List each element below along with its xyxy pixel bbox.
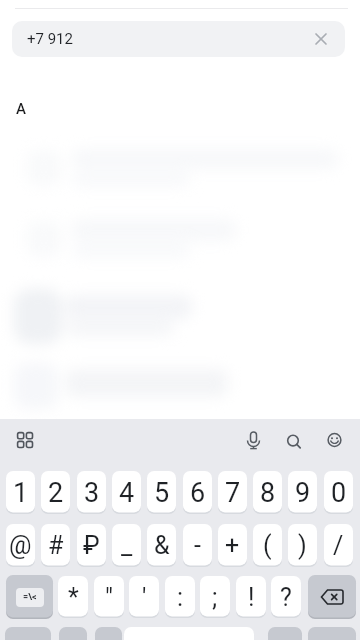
staticText: 6	[190, 477, 206, 509]
button[interactable]: -	[183, 524, 212, 567]
button[interactable]	[324, 430, 345, 451]
button[interactable]: 8	[253, 471, 282, 514]
staticText: 2	[48, 477, 64, 509]
button[interactable]: ?	[271, 576, 301, 618]
button[interactable]: +7 912	[12, 21, 345, 57]
staticText: 3	[84, 477, 100, 509]
staticText: _	[121, 531, 133, 560]
staticText: 1	[13, 477, 29, 509]
staticText: ;	[212, 583, 218, 612]
staticText: 4	[119, 477, 135, 509]
button[interactable]: 9	[288, 471, 317, 514]
staticText: '	[142, 583, 147, 612]
button[interactable]: 0	[324, 471, 353, 514]
button[interactable]: 1	[6, 471, 35, 514]
button[interactable]: 2	[41, 471, 70, 514]
staticText: 8	[260, 477, 276, 509]
staticText: *	[68, 583, 79, 612]
button[interactable]: ;	[200, 576, 230, 618]
button[interactable]	[5, 627, 51, 640]
staticText: /	[333, 531, 344, 560]
button[interactable]: +	[218, 524, 247, 567]
staticText: +7 912	[27, 30, 73, 48]
staticText: 7	[225, 477, 241, 509]
staticText: #	[48, 531, 64, 560]
button[interactable]	[308, 627, 356, 640]
staticText: -	[194, 531, 201, 560]
button[interactable]	[315, 33, 327, 45]
staticText: (	[263, 531, 272, 560]
button[interactable]: _	[112, 524, 141, 567]
button[interactable]: =\<	[6, 575, 53, 619]
button[interactable]: 7	[218, 471, 247, 514]
staticText: =\<	[23, 592, 37, 603]
button[interactable]: (	[253, 524, 282, 567]
button[interactable]: )	[288, 524, 317, 567]
button[interactable]	[0, 284, 360, 350]
button[interactable]: 3	[77, 471, 106, 514]
button[interactable]	[268, 627, 302, 640]
staticText: ?	[280, 583, 292, 612]
button[interactable]: /	[324, 524, 353, 567]
button[interactable]	[15, 430, 35, 450]
button[interactable]: 6	[183, 471, 212, 514]
staticText: 5	[154, 477, 170, 509]
staticText: 9	[295, 477, 311, 509]
button[interactable]	[0, 356, 360, 418]
button[interactable]	[95, 627, 122, 640]
button[interactable]: ₽	[77, 524, 106, 567]
staticText: +	[225, 531, 240, 560]
staticText: @	[9, 531, 32, 560]
button[interactable]: :	[165, 576, 195, 618]
button[interactable]	[308, 575, 356, 619]
button[interactable]	[243, 428, 264, 452]
staticText: )	[298, 531, 307, 560]
staticText: A	[16, 100, 26, 118]
button[interactable]	[59, 627, 87, 640]
button[interactable]: #	[41, 524, 70, 567]
button[interactable]: *	[58, 576, 88, 618]
button[interactable]	[284, 432, 304, 452]
button[interactable]: @	[6, 524, 35, 567]
staticText: !	[248, 583, 255, 612]
staticText: &	[154, 531, 170, 560]
button[interactable]: "	[94, 576, 124, 618]
button[interactable]: 4	[112, 471, 141, 514]
button[interactable]: '	[129, 576, 159, 618]
button[interactable]: 5	[147, 471, 176, 514]
staticText: 0	[331, 477, 347, 509]
staticText: :	[177, 583, 184, 612]
staticText: ₽	[83, 531, 100, 560]
button[interactable]: !	[236, 576, 266, 618]
button[interactable]: &	[147, 524, 176, 567]
staticText: "	[105, 583, 114, 612]
